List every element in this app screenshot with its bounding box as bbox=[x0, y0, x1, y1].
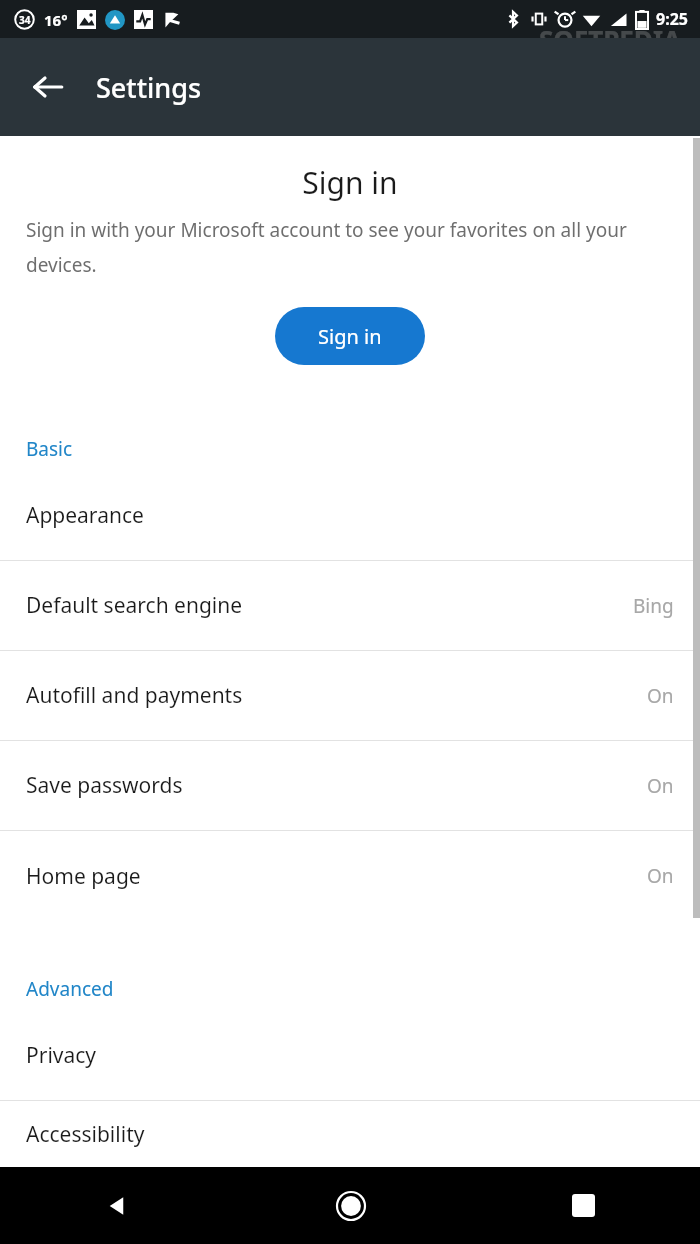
button[interactable]: Privacy bbox=[0, 1011, 700, 1100]
button[interactable]: Save passwords bbox=[0, 741, 700, 830]
button[interactable]: Back bbox=[0, 1167, 234, 1244]
staticText: Privacy bbox=[26, 1041, 674, 1070]
button[interactable]: Appearance bbox=[0, 471, 700, 560]
staticText: On bbox=[647, 683, 674, 709]
button[interactable]: Sign in bbox=[275, 307, 425, 365]
staticText: Settings bbox=[96, 69, 202, 106]
button[interactable]: Default search engine bbox=[0, 561, 700, 650]
button[interactable]: Back bbox=[18, 57, 78, 117]
staticText: Sign in with your Microsoft account to s… bbox=[26, 217, 674, 277]
staticText: Bing bbox=[633, 593, 674, 619]
button[interactable]: Home bbox=[234, 1167, 467, 1244]
staticText: Sign in bbox=[318, 323, 382, 350]
button[interactable]: Accessibility bbox=[0, 1101, 700, 1167]
staticText: Home page bbox=[26, 862, 647, 891]
staticText: Basic bbox=[26, 436, 73, 462]
staticText: Sign in bbox=[0, 162, 700, 203]
staticText: On bbox=[647, 863, 674, 889]
staticText: Default search engine bbox=[26, 591, 633, 620]
button[interactable]: Recent apps bbox=[467, 1167, 700, 1244]
staticText: On bbox=[647, 773, 674, 799]
staticText: 34 bbox=[19, 13, 31, 27]
staticText: SOFTPEDIA bbox=[539, 22, 682, 38]
button[interactable]: Autofill and payments bbox=[0, 651, 700, 740]
staticText: Accessibility bbox=[26, 1120, 674, 1149]
staticText: Autofill and payments bbox=[26, 681, 647, 710]
staticText: 16° bbox=[44, 10, 68, 30]
staticText: Advanced bbox=[26, 976, 114, 1002]
staticText: Save passwords bbox=[26, 771, 647, 800]
staticText: Appearance bbox=[26, 501, 674, 530]
button[interactable]: Home page bbox=[0, 831, 700, 921]
staticText: 9:25 bbox=[656, 8, 688, 30]
